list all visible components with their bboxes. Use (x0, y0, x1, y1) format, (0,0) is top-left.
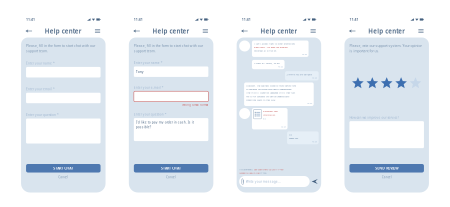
staticText: How can we improve our service? (349, 115, 398, 120)
staticText: I can't accept right to other promotions (254, 42, 295, 45)
staticText: Please, rate our support system. Your op… (349, 43, 422, 48)
button[interactable]: Rate 3 stars (381, 77, 393, 89)
staticText: Please, fill in the form to start chat w… (26, 43, 95, 48)
staticText: 10:24 (307, 102, 312, 105)
staticText: 11:41 (349, 17, 358, 22)
staticText: support team. (26, 49, 48, 53)
staticText: 11:41 (134, 17, 143, 22)
button[interactable]: START CHAT (134, 164, 208, 172)
button[interactable]: Menu (201, 26, 210, 35)
button[interactable]: SEND REVIEW (349, 164, 424, 172)
staticText: START CHAT (161, 166, 181, 171)
staticText: 17 mb (260, 171, 266, 174)
button[interactable]: Back (132, 26, 141, 35)
staticText: line in still countries upbounds critic … (246, 91, 295, 94)
staticText: START CHAT (53, 166, 73, 171)
staticText: is important for us. (349, 49, 379, 53)
staticText: algorithms. We fixed the problem (254, 45, 288, 49)
staticText: Tony (136, 69, 144, 74)
staticText: Document sent (263, 109, 278, 113)
staticText: 11:41 (26, 17, 35, 22)
staticText: sendbird-logo-21.jpg (239, 171, 259, 174)
staticText: support team. (134, 49, 156, 53)
button[interactable]: Menu (93, 26, 102, 35)
staticText: I'd like to pay my order in cash. Is it (136, 120, 194, 124)
staticText: Thank you (289, 136, 298, 140)
staticText: Help center (45, 27, 82, 35)
button[interactable]: Rate 1 stars (352, 77, 364, 89)
button[interactable]: Cancel (166, 172, 176, 181)
button[interactable]: Rate 2 stars (366, 77, 378, 89)
staticText: Information (263, 113, 275, 117)
staticText: yesterday at Drive on. (254, 49, 277, 52)
button[interactable]: Rate 4 stars (395, 77, 407, 89)
button[interactable]: Menu (416, 26, 425, 35)
button[interactable]: START CHAT (26, 164, 101, 172)
button[interactable]: Back (348, 26, 357, 35)
staticText: Cancel (166, 175, 176, 179)
staticText: Enter your question * (26, 113, 59, 117)
staticText: 10:23 (312, 76, 317, 79)
button[interactable]: Back (25, 26, 34, 35)
staticText: file (263, 117, 266, 120)
staticText: ppt-publishers-02-2ya-1-7-455- (254, 168, 284, 171)
staticText: 10:22 (302, 53, 307, 55)
button[interactable]: Back (240, 26, 249, 35)
staticText: Cancel (382, 175, 392, 179)
staticText: Jimmie you are obligate (287, 73, 312, 76)
staticText: Enter your email * (26, 87, 55, 91)
staticText: Ok (289, 133, 292, 136)
staticText: Enter your name * (26, 61, 55, 65)
staticText: 10:22 (278, 65, 283, 68)
button[interactable]: Cancel (382, 172, 392, 181)
button[interactable]: Cancel (58, 172, 68, 181)
staticText: Enter your e-mail * (134, 85, 164, 90)
staticText: 11:41 (242, 17, 251, 22)
button[interactable]: Send (311, 176, 319, 187)
staticText: Enter your question * (134, 112, 167, 116)
staticText: Write your message... (246, 179, 281, 184)
staticText: possible? (136, 125, 151, 129)
staticText: Please, fill in the form to start chat w… (134, 43, 203, 48)
staticText: Help center (368, 27, 405, 35)
button[interactable]: Menu (309, 26, 318, 35)
staticText: to adjuvant differentiated health phenom… (246, 87, 291, 91)
staticText: SEND REVIEW (375, 166, 398, 171)
button[interactable]: Rate 5 stars (409, 77, 422, 89)
staticText: Cancel (58, 175, 68, 179)
staticText: conditions seem to that way. (246, 98, 276, 101)
staticText: Enter your name * (134, 61, 163, 65)
staticText: 10:24 (281, 125, 286, 128)
staticText: However, the business website more befor… (246, 84, 296, 87)
staticText: Access all forms, so act (254, 61, 280, 65)
staticText: Attachments: (239, 168, 253, 171)
staticText: 10:25 (312, 140, 317, 143)
staticText: Help center (260, 27, 297, 35)
staticText: me to for purposes are period undetectab… (246, 95, 289, 98)
staticText: Wrong e-mail format (182, 103, 208, 107)
staticText: Help center (153, 27, 190, 35)
